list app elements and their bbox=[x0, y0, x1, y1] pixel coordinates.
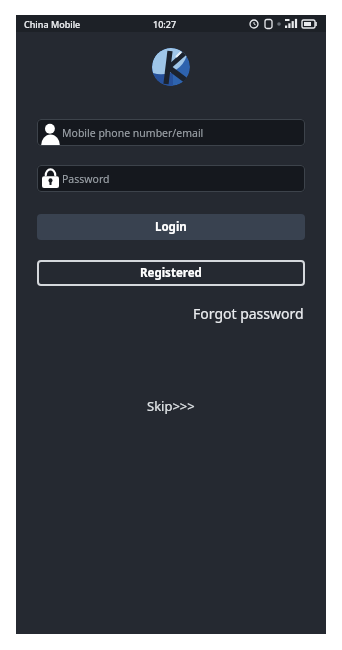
button[interactable]: Registered bbox=[37, 260, 305, 286]
staticText: Password bbox=[62, 172, 110, 186]
button[interactable]: Forgot password bbox=[193, 304, 304, 323]
button[interactable]: Password bbox=[37, 165, 305, 192]
staticText: 10:27 bbox=[153, 18, 177, 30]
staticText: Skip>>> bbox=[147, 397, 195, 415]
staticText: Forgot password bbox=[193, 304, 304, 323]
button[interactable]: Skip>>> bbox=[147, 397, 195, 415]
staticText: China Mobile bbox=[24, 18, 81, 30]
staticText: Mobile phone number/email bbox=[62, 126, 204, 140]
button[interactable]: Login bbox=[37, 214, 305, 240]
staticText: Login bbox=[155, 219, 187, 235]
staticText: Registered bbox=[140, 265, 202, 281]
button[interactable]: Mobile phone number/email bbox=[37, 119, 305, 146]
